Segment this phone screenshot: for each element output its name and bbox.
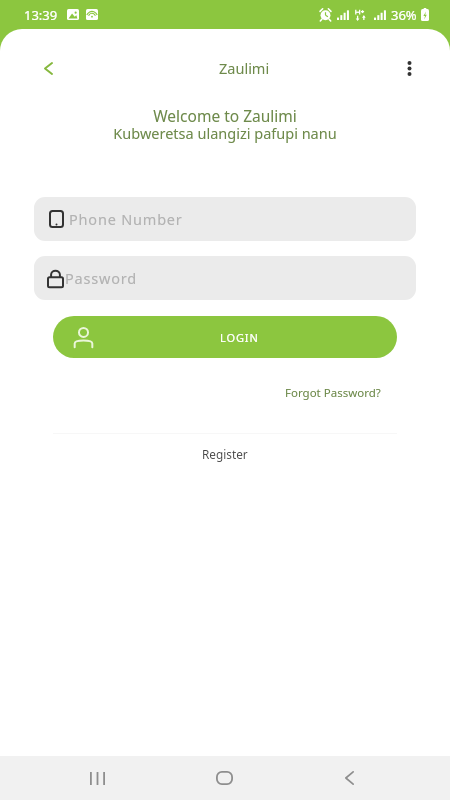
button[interactable]: More options xyxy=(392,51,426,85)
staticText: Forgot Password? xyxy=(285,385,381,401)
staticText: 13:39 xyxy=(24,6,58,24)
button[interactable]: Phone Number xyxy=(34,197,416,241)
button[interactable]: Back xyxy=(31,51,65,85)
button[interactable]: Password xyxy=(34,256,416,300)
staticText: LOGIN xyxy=(220,330,259,345)
staticText: Password xyxy=(65,268,137,288)
button[interactable]: Home xyxy=(202,756,246,800)
button[interactable]: Recents xyxy=(75,756,119,800)
staticText: Zaulimi xyxy=(219,58,270,78)
staticText: Register xyxy=(202,446,248,462)
button[interactable]: Forgot Password? xyxy=(285,385,450,401)
staticText: Phone Number xyxy=(69,209,183,229)
staticText: Welcome to Zaulimi xyxy=(0,105,450,126)
button[interactable]: LOGIN xyxy=(53,316,397,358)
staticText: 36% xyxy=(391,6,417,24)
button[interactable]: Back xyxy=(327,756,371,800)
button[interactable]: Register xyxy=(184,442,266,466)
staticText: Kubweretsa ulangizi pafupi nanu xyxy=(0,123,450,143)
